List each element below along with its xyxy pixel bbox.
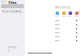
staticText: Browse (8, 45, 17, 52)
staticText: Edit (1, 0, 6, 3)
button[interactable] (53, 19, 80, 23)
staticText: Notes (62, 15, 66, 17)
staticText: Recently added documents and folders (2, 10, 25, 13)
button[interactable]: Photos (74, 11, 80, 17)
button[interactable] (53, 27, 80, 31)
button[interactable] (53, 35, 80, 39)
staticText: Photos (74, 15, 79, 17)
button[interactable] (53, 39, 80, 43)
button[interactable]: Docs (54, 11, 61, 17)
staticText: Files (8, 0, 16, 5)
button[interactable] (53, 31, 80, 35)
button[interactable]: Browse (8, 45, 17, 52)
staticText: Books (68, 15, 73, 17)
button[interactable]: Notes (61, 11, 67, 17)
button[interactable]: Books (67, 11, 74, 17)
button[interactable] (53, 23, 80, 27)
staticText: FAVOURITES (55, 6, 70, 9)
staticText: Docs (55, 15, 59, 17)
